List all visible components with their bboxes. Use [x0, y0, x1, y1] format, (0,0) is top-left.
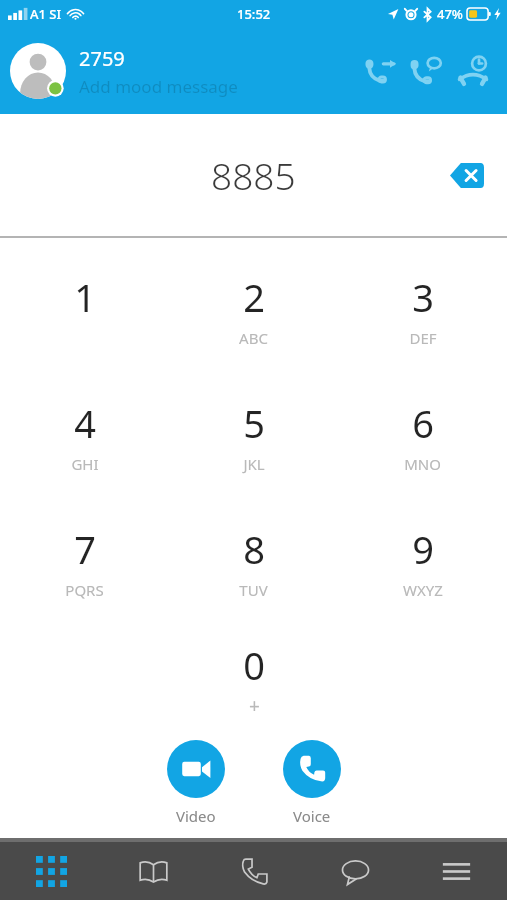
staticText: 2759: [79, 45, 125, 72]
button[interactable]: 9: [338, 498, 507, 624]
button[interactable]: Chats: [305, 842, 406, 900]
staticText: 8885: [211, 150, 296, 200]
staticText: 1: [74, 271, 96, 323]
button[interactable]: Voice: [277, 738, 347, 828]
staticText: WXYZ: [403, 580, 443, 600]
button[interactable]: Video: [161, 738, 231, 828]
staticText: 6: [412, 397, 434, 449]
button[interactable]: 7: [0, 498, 169, 624]
button[interactable]: 1: [0, 246, 169, 372]
button[interactable]: Recent calls: [453, 51, 493, 91]
staticText: 5: [243, 397, 265, 449]
staticText: DEF: [409, 328, 437, 348]
staticText: 8: [243, 523, 265, 575]
staticText: 0: [243, 639, 265, 691]
staticText: Voice: [293, 806, 331, 826]
button[interactable]: Contacts: [102, 842, 204, 900]
button[interactable]: 2759: [10, 43, 238, 99]
staticText: 9: [412, 523, 434, 575]
button[interactable]: Forward call: [361, 51, 401, 91]
staticText: 3: [412, 271, 434, 323]
button[interactable]: Menu: [406, 842, 507, 900]
button[interactable]: 4: [0, 372, 169, 498]
button[interactable]: Call with message: [407, 51, 447, 91]
staticText: ABC: [239, 328, 268, 348]
staticText: GHI: [71, 454, 99, 474]
staticText: 15:52: [237, 5, 271, 23]
button[interactable]: 8: [169, 498, 338, 624]
button[interactable]: Calls: [204, 842, 305, 900]
staticText: JKL: [243, 454, 265, 474]
button[interactable]: 6: [338, 372, 507, 498]
staticText: Video: [176, 806, 216, 826]
staticText: MNO: [404, 454, 441, 474]
staticText: 2: [243, 271, 265, 323]
staticText: TUV: [239, 580, 268, 600]
staticText: 4: [74, 397, 96, 449]
staticText: A1 SI: [30, 5, 62, 23]
button[interactable]: 2: [169, 246, 338, 372]
button[interactable]: 3: [338, 246, 507, 372]
staticText: PQRS: [65, 580, 104, 600]
button[interactable]: Dialpad: [0, 842, 102, 900]
staticText: Add mood message: [79, 75, 238, 98]
button[interactable]: 0: [169, 624, 338, 734]
button[interactable]: Backspace: [445, 153, 489, 197]
staticText: 47%: [437, 5, 463, 23]
staticText: 7: [74, 523, 96, 575]
button[interactable]: 5: [169, 372, 338, 498]
staticText: +: [249, 693, 260, 719]
